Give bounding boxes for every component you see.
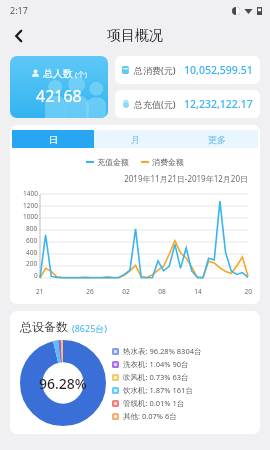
staticText: 项目概况 bbox=[107, 27, 163, 45]
staticText: 日 bbox=[49, 134, 58, 145]
staticText: 1200 bbox=[23, 201, 38, 210]
button[interactable]: 总消费(元) bbox=[115, 56, 260, 84]
staticText: 10,052,599.51 bbox=[184, 63, 253, 77]
button[interactable]: 总人数 bbox=[10, 56, 108, 118]
staticText: 800 bbox=[26, 224, 38, 233]
staticText: 充值金额 bbox=[97, 157, 129, 167]
staticText: 管线机: 0.01% 1台 bbox=[123, 398, 185, 408]
staticText: 总充值(元) bbox=[134, 98, 176, 110]
staticText: 200 bbox=[26, 259, 38, 268]
staticText: 20 bbox=[216, 287, 252, 296]
staticText: 600 bbox=[26, 236, 38, 245]
staticText: (8625台) bbox=[72, 322, 107, 334]
staticText: 02 bbox=[108, 287, 144, 296]
staticText: 96.28% bbox=[39, 374, 87, 393]
staticText: 1000 bbox=[23, 212, 38, 221]
staticText: 吹风机: 0.73% 63台 bbox=[123, 372, 189, 382]
staticText: 洗衣机: 1.04% 90台 bbox=[123, 359, 189, 369]
staticText: 42168 bbox=[36, 85, 82, 107]
staticText: 更多 bbox=[208, 134, 226, 145]
staticText: 其他: 0.07% 6台 bbox=[123, 411, 177, 421]
staticText: 2019年11月21日-2019年12月20日 bbox=[10, 173, 248, 184]
button[interactable]: 日 bbox=[12, 130, 94, 148]
button[interactable]: Back bbox=[4, 21, 34, 51]
staticText: 总设备数 bbox=[20, 319, 68, 334]
button[interactable]: 总充值(元) bbox=[115, 90, 260, 118]
staticText: 热水表: 96.28% 8304台 bbox=[123, 346, 202, 356]
staticText: 0 bbox=[34, 271, 38, 280]
staticText: 12,232,122.17 bbox=[184, 97, 253, 111]
staticText: 消费金额 bbox=[152, 157, 184, 167]
staticText: 26 bbox=[72, 287, 108, 296]
staticText: (个) bbox=[75, 69, 87, 79]
staticText: 14 bbox=[180, 287, 216, 296]
staticText: 08 bbox=[144, 287, 180, 296]
staticText: 400 bbox=[26, 248, 38, 257]
staticText: 总消费(元) bbox=[134, 64, 176, 76]
staticText: 月 bbox=[131, 134, 140, 145]
staticText: 2:17 bbox=[10, 4, 28, 16]
staticText: 饮水机: 1.87% 161台 bbox=[123, 385, 193, 395]
staticText: 总人数 bbox=[43, 67, 73, 80]
button[interactable]: 月 bbox=[94, 130, 176, 148]
button[interactable]: 更多 bbox=[176, 130, 258, 148]
staticText: 21 bbox=[36, 287, 72, 296]
staticText: 1400 bbox=[23, 189, 38, 198]
